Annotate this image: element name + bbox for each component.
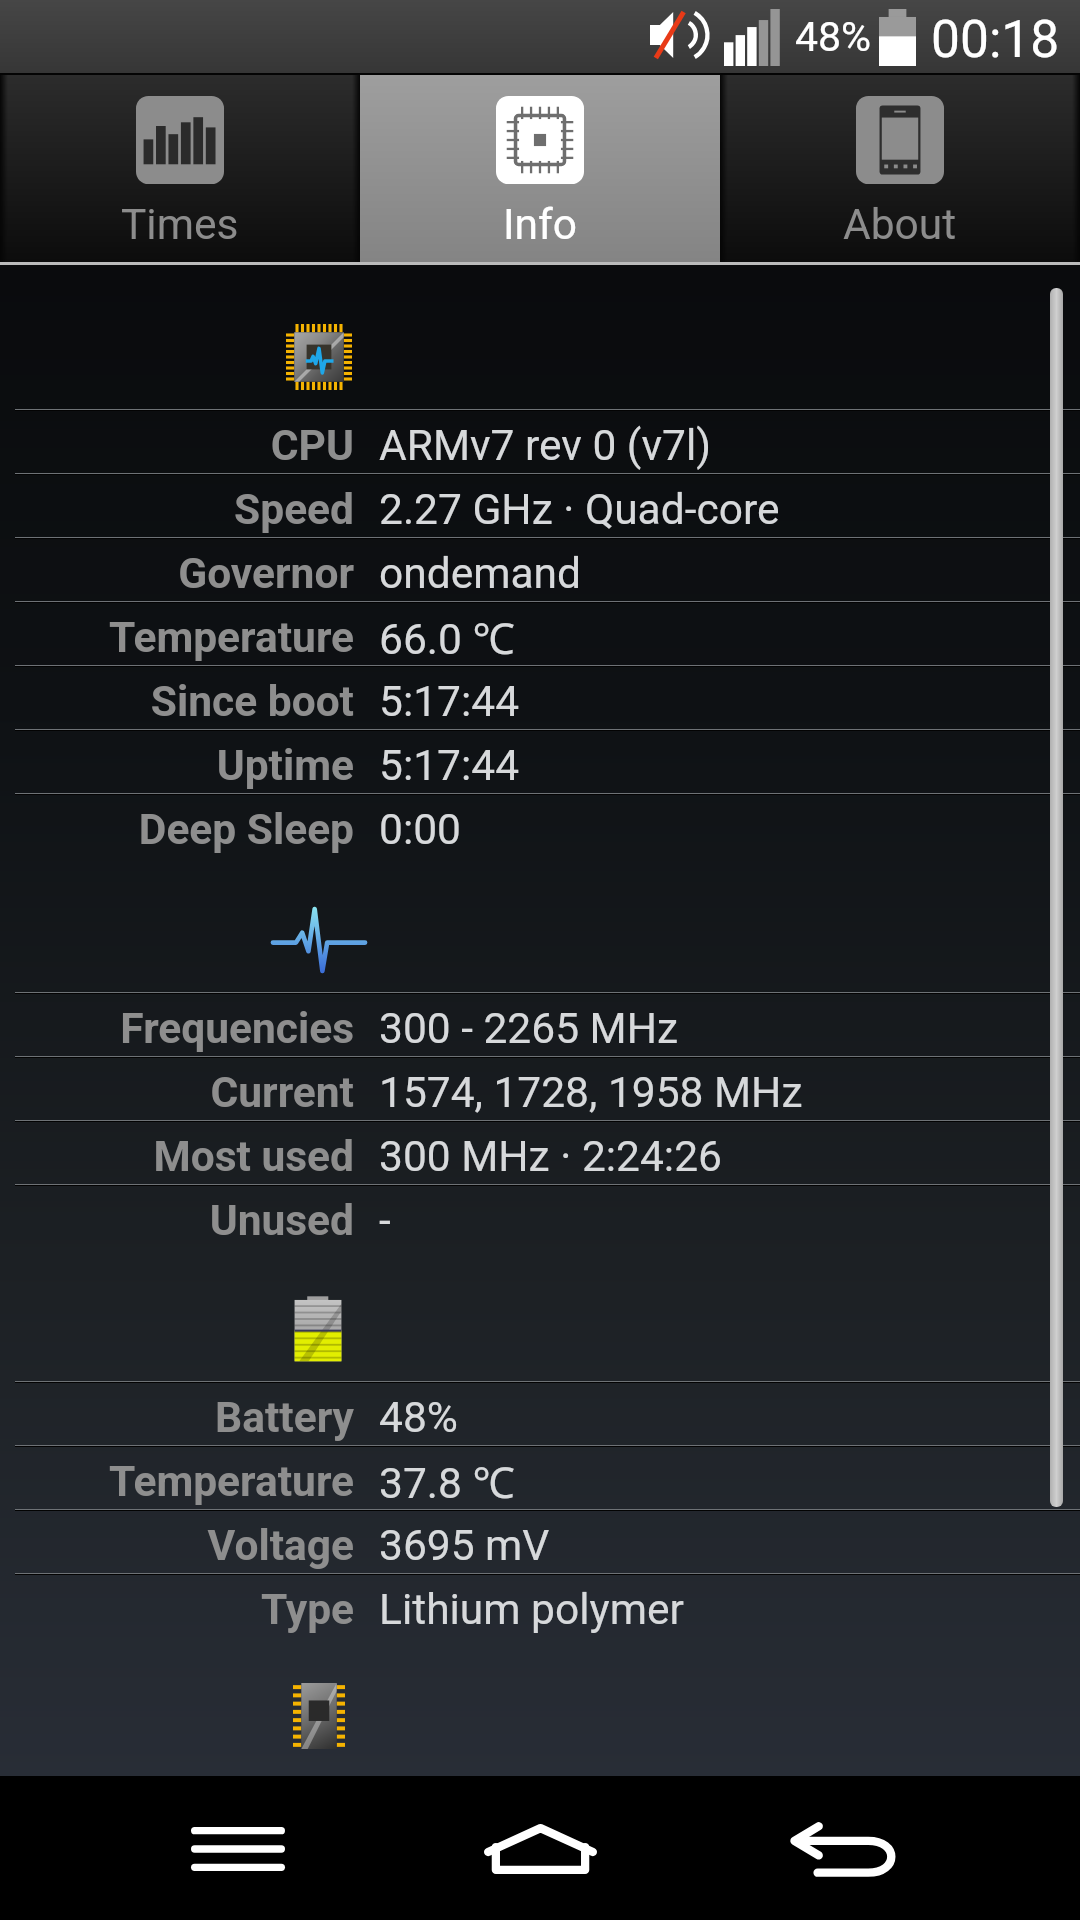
button[interactable]: Battery [0,1383,1080,1445]
button[interactable]: Home [432,1776,648,1920]
button[interactable]: Most used [0,1122,1080,1184]
button[interactable]: Info [360,75,720,262]
button[interactable]: Frequencies [0,994,1080,1056]
staticText: 3695 mV [379,1521,550,1571]
staticText: Most used [0,1132,354,1182]
staticText: 5:17:44 [379,741,520,791]
button[interactable]: Governor [0,539,1080,601]
staticText: Unused [0,1196,354,1246]
staticText: Temperature [0,1457,354,1507]
button[interactable]: Times [0,75,360,262]
staticText: Uptime [0,741,354,791]
staticText: CPU [0,421,354,471]
staticText: Type [0,1585,354,1635]
staticText: 5:17:44 [379,677,520,727]
button[interactable]: Unused [0,1186,1080,1248]
staticText: Temperature [0,613,354,663]
button[interactable]: Current [0,1058,1080,1120]
button[interactable]: CPU [0,411,1080,473]
staticText: 37.8 ℃ [379,1453,515,1511]
button[interactable]: Back [736,1776,952,1920]
staticText: ARMv7 rev 0 (v7l) [379,421,712,471]
staticText: 48% [795,13,872,61]
staticText: 1574, 1728, 1958 MHz [379,1068,803,1118]
staticText: - [379,1196,391,1246]
button[interactable]: Uptime [0,731,1080,793]
staticText: Frequencies [0,1004,354,1054]
staticText: 2.27 GHz · Quad-core [379,485,780,535]
button[interactable]: About [720,75,1080,262]
button[interactable]: Menu [130,1776,346,1920]
staticText: Voltage [0,1521,354,1571]
staticText: 66.0 ℃ [379,609,515,667]
staticText: 0:00 [379,805,461,855]
staticText: Speed [0,485,354,535]
staticText: 300 MHz · 2:24:26 [379,1132,722,1182]
button[interactable]: Temperature [0,603,1080,665]
staticText: 48% [379,1393,458,1443]
button[interactable]: Type [0,1575,1080,1637]
button[interactable]: Speed [0,475,1080,537]
staticText: Times [121,200,239,250]
staticText: Deep Sleep [0,805,354,855]
staticText: Since boot [0,677,354,727]
staticText: Battery [0,1393,354,1443]
staticText: 00:18 [931,9,1060,69]
button[interactable]: Deep Sleep [0,795,1080,857]
staticText: Governor [0,549,354,599]
staticText: Info [503,200,578,250]
button[interactable]: Since boot [0,667,1080,729]
staticText: About [843,200,957,250]
button[interactable]: Temperature [0,1447,1080,1509]
staticText: Lithium polymer [379,1585,684,1635]
staticText: Current [0,1068,354,1118]
button[interactable]: Voltage [0,1511,1080,1573]
staticText: 300 - 2265 MHz [379,1004,679,1054]
staticText: ondemand [379,549,582,599]
